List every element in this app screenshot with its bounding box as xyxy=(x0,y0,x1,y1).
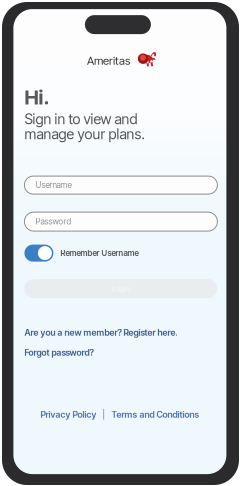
button[interactable]: Privacy Policy xyxy=(40,409,96,420)
staticText: Remember Username xyxy=(60,248,138,258)
staticText: Terms and Conditions xyxy=(111,409,199,420)
button[interactable]: Remember Username xyxy=(24,244,217,262)
staticText: Password xyxy=(35,217,71,227)
button[interactable]: Terms and Conditions xyxy=(111,409,199,420)
staticText: manage your plans. xyxy=(24,125,144,143)
staticText: Privacy Policy xyxy=(40,409,96,420)
staticText: | xyxy=(96,409,111,420)
staticText: Are you a new member? Register here. xyxy=(24,327,177,338)
staticText: Hi. xyxy=(24,85,49,109)
staticText: Ameritas xyxy=(87,54,130,67)
staticText: Username xyxy=(35,180,71,190)
button[interactable]: Are you a new member? Register here. xyxy=(24,327,217,338)
staticText: Sign in to view and xyxy=(24,110,137,128)
staticText: Forgot password? xyxy=(24,347,93,358)
button[interactable]: Forgot password? xyxy=(24,347,217,358)
